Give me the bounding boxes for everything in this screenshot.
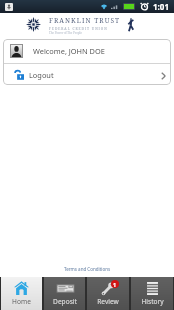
staticText: FRANKLIN TRUST	[49, 16, 121, 25]
button[interactable]: History	[131, 277, 173, 310]
staticText: Review	[97, 297, 119, 306]
button[interactable]: Logout	[3, 64, 171, 85]
staticText: 1:01	[153, 1, 169, 12]
button[interactable]: Deposit	[44, 277, 85, 310]
staticText: History	[141, 297, 164, 306]
button[interactable]: Home	[1, 277, 42, 310]
staticText: Welcome, JOHN DOE	[33, 46, 105, 56]
staticText: Logout	[29, 70, 54, 80]
staticText: Deposit	[53, 297, 77, 306]
button[interactable]: 1	[87, 277, 129, 310]
staticText: Home	[12, 297, 31, 306]
staticText: The Power of The People	[49, 31, 82, 35]
button[interactable]: Terms and Conditions	[64, 266, 111, 272]
button[interactable]: Welcome, JOHN DOE	[3, 39, 171, 63]
staticText: FEDERAL CREDIT UNION	[49, 26, 108, 30]
staticText: 1	[113, 281, 117, 288]
